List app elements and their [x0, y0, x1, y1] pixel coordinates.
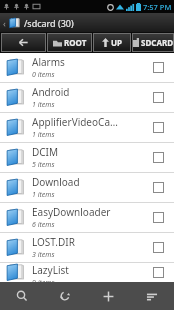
button[interactable]: Back	[1, 33, 46, 52]
button[interactable]: Select Download	[153, 182, 164, 193]
staticText: 0 items	[32, 70, 55, 80]
staticText: 1 items	[32, 130, 55, 140]
button[interactable]: Select DCIM	[153, 152, 164, 163]
staticText: 7:57 PM	[143, 2, 172, 12]
staticText: EasyDownloader	[32, 205, 111, 219]
staticText: 6 items	[32, 220, 55, 230]
button[interactable]: ApplifierVideoCa…	[0, 113, 174, 142]
staticText: ROOT	[64, 37, 87, 48]
button[interactable]: Download	[0, 173, 174, 202]
staticText: 3 items	[32, 250, 55, 260]
button[interactable]: LOST.DIR	[0, 233, 174, 262]
staticText: ‹	[3, 17, 6, 29]
button[interactable]: DCIM	[0, 143, 174, 172]
staticText: 5 items	[32, 160, 55, 170]
button[interactable]: LazyList	[0, 263, 174, 282]
staticText: ApplifierVideoCa…	[32, 115, 118, 129]
button[interactable]: Select LOST.DIR	[153, 242, 164, 253]
staticText: SDCARD	[141, 37, 174, 48]
staticText: Download	[32, 175, 80, 189]
staticText: /sdcard (30)	[24, 17, 74, 29]
button[interactable]: Search	[0, 282, 43, 310]
staticText: Alarms	[32, 55, 65, 69]
button[interactable]: Select EasyDownloader	[153, 212, 164, 223]
button[interactable]: Select Android	[153, 92, 164, 103]
button[interactable]: Refresh	[43, 282, 86, 310]
staticText: Android	[32, 85, 70, 99]
staticText: 1 items	[32, 100, 55, 110]
staticText: LOST.DIR	[32, 235, 75, 249]
staticText: LazyList	[32, 263, 69, 277]
button[interactable]: Select LazyList	[153, 267, 164, 278]
button[interactable]: Sort	[130, 282, 174, 310]
button[interactable]: Add	[86, 282, 130, 310]
staticText: 1 items	[32, 190, 55, 200]
button[interactable]: Alarms	[0, 53, 174, 82]
button[interactable]: Android	[0, 83, 174, 112]
button[interactable]: ROOT	[47, 33, 92, 52]
staticText: DCIM	[32, 145, 59, 159]
button[interactable]: EasyDownloader	[0, 203, 174, 232]
button[interactable]: Select Alarms	[153, 62, 164, 73]
staticText: 9 items	[32, 278, 55, 282]
button[interactable]: SDCARD	[132, 33, 174, 52]
staticText: UP	[111, 37, 123, 48]
button[interactable]: Select ApplifierVideoCa…	[153, 122, 164, 133]
button[interactable]: UP	[93, 33, 131, 52]
